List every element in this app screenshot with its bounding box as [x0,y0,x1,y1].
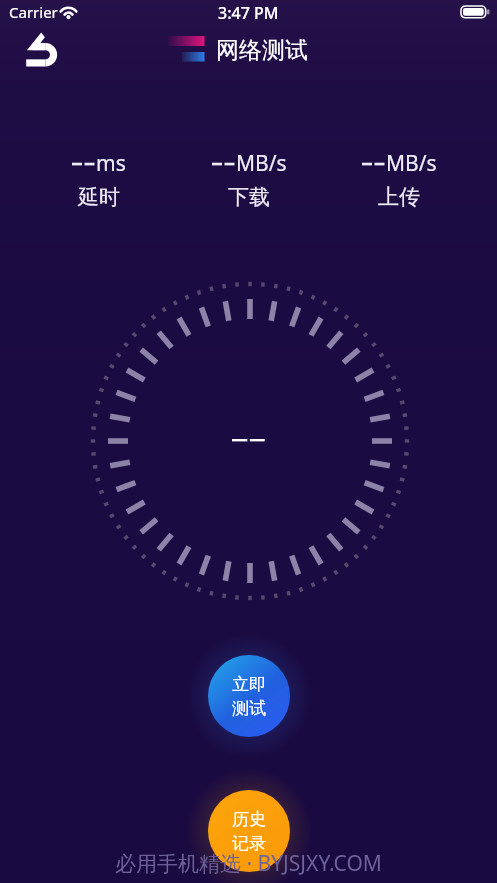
staticText: 上传 [378,184,420,210]
staticText: Carrier [9,2,58,19]
staticText: 立即 测试 [232,674,266,719]
button[interactable]: 历史 记录 [208,790,290,872]
staticText: 延时 [78,184,120,210]
staticText: ms [96,149,126,178]
staticText: 历史 记录 [232,809,266,854]
button[interactable]: Back [14,28,66,74]
button[interactable]: 立即 测试 [208,655,290,737]
staticText: 3:47 PM [218,2,279,19]
staticText: 必用手机精选 · BYJSJXY.COM [115,849,382,878]
staticText: MB/s [236,149,287,178]
staticText: 网络测试 [216,36,308,65]
staticText: MB/s [386,149,437,178]
staticText: 下载 [228,184,270,210]
